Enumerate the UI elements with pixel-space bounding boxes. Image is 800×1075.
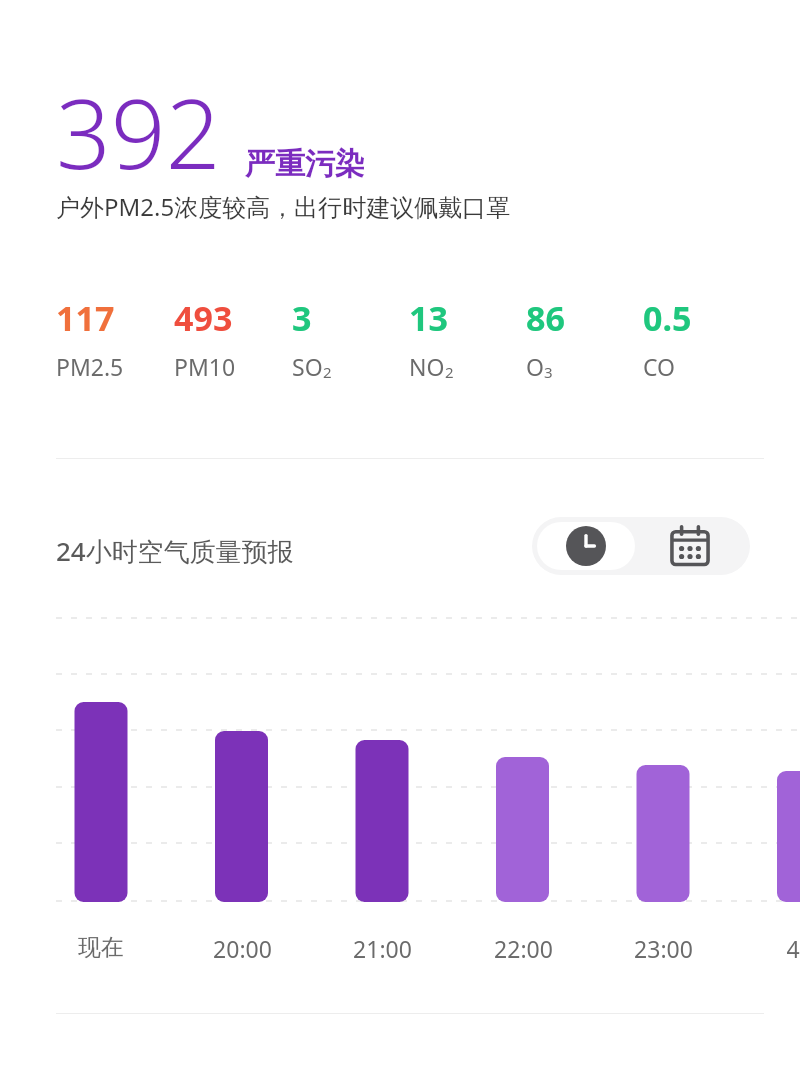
staticText: 21:00 xyxy=(353,933,412,964)
button[interactable]: 493 xyxy=(174,295,292,382)
staticText: 23:00 xyxy=(634,933,693,964)
staticText: PM10 xyxy=(174,351,236,382)
staticText: O xyxy=(526,351,544,382)
staticText: 22:00 xyxy=(494,933,553,964)
staticText: 现在 xyxy=(78,933,124,962)
button[interactable]: 4月 xyxy=(744,933,800,964)
button[interactable]: 20:00 xyxy=(182,933,302,964)
staticText: 0.5 xyxy=(643,295,692,341)
button[interactable]: 13 xyxy=(409,295,526,382)
staticText: 20:00 xyxy=(213,933,272,964)
button[interactable]: Daily forecast xyxy=(655,517,725,575)
button[interactable]: 21:00 xyxy=(322,933,442,964)
button[interactable]: 117 xyxy=(56,295,174,382)
staticText: CO xyxy=(643,351,676,382)
staticText: 24小时空气质量预报 xyxy=(56,533,294,569)
staticText: 3 xyxy=(292,295,312,341)
button[interactable]: 23:00 xyxy=(603,933,723,964)
staticText: 117 xyxy=(56,295,115,341)
staticText: SO xyxy=(292,351,323,382)
staticText: 2 xyxy=(445,362,454,382)
button[interactable]: Hourly forecast xyxy=(537,522,635,570)
button[interactable]: 3 xyxy=(292,295,409,382)
staticText: 13 xyxy=(409,295,448,341)
button[interactable]: 22:00 xyxy=(463,933,583,964)
staticText: PM2.5 xyxy=(56,351,124,382)
staticText: 392 xyxy=(56,66,221,197)
button[interactable]: 86 xyxy=(526,295,643,382)
button[interactable]: 0.5 xyxy=(643,295,760,382)
staticText: 2 xyxy=(323,362,332,382)
staticText: NO xyxy=(409,351,445,382)
staticText: 86 xyxy=(526,295,565,341)
staticText: 493 xyxy=(174,295,233,341)
staticText: 户外PM2.5浓度较高，出行时建议佩戴口罩 xyxy=(56,190,511,223)
staticText: 4月 xyxy=(786,933,800,964)
button[interactable]: 392 xyxy=(56,66,365,197)
staticText: 3 xyxy=(544,362,553,382)
staticText: 严重污染 xyxy=(245,145,365,183)
button[interactable]: 现在 xyxy=(41,933,161,962)
